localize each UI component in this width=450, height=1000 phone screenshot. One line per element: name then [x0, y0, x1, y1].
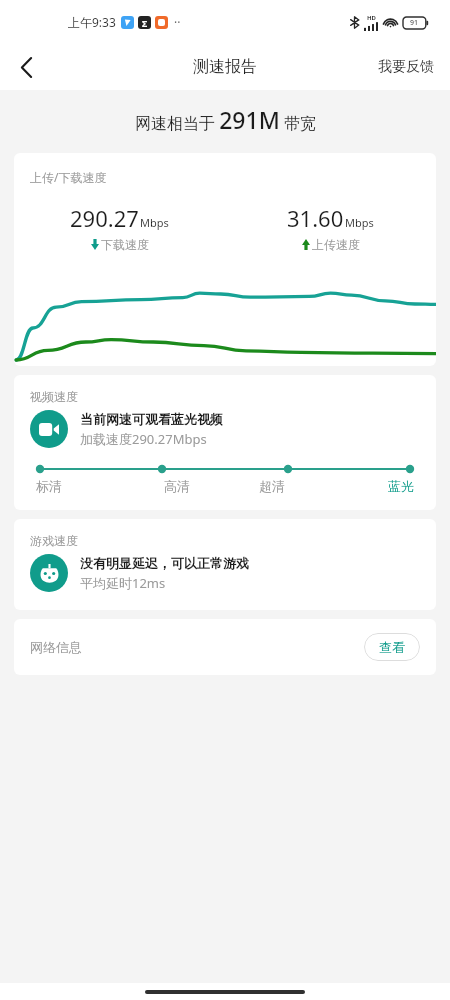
staticText: 当前网速可观看蓝光视频 — [80, 411, 223, 427]
staticText: 91 — [410, 18, 419, 28]
button[interactable]: 查看 — [364, 633, 420, 661]
staticText: 上传速度 — [312, 237, 360, 252]
staticText: 290.27 — [70, 203, 139, 233]
staticText: 网速相当于 291M 带宽 — [135, 104, 316, 135]
staticText: ·· — [174, 14, 181, 30]
button[interactable]: 我要反馈 — [362, 44, 450, 90]
staticText: Σ — [142, 17, 148, 29]
staticText: 高清 — [164, 478, 190, 494]
staticText: 测速报告 — [193, 57, 257, 77]
staticText: 没有明显延迟，可以正常游戏 — [80, 555, 249, 571]
staticText: 游戏速度 — [30, 533, 78, 548]
staticText: 网络信息 — [30, 639, 82, 655]
staticText: 标清 — [36, 478, 62, 494]
staticText: 下载速度 — [101, 237, 149, 252]
staticText: 上午9:33 — [68, 14, 116, 30]
staticText: 查看 — [379, 639, 405, 655]
staticText: HD — [367, 14, 376, 22]
staticText: Mbps — [345, 215, 374, 230]
staticText: Mbps — [140, 215, 169, 230]
staticText: 平均延时12ms — [80, 574, 166, 592]
staticText: 上传/下载速度 — [30, 169, 107, 185]
staticText: 加载速度290.27Mbps — [80, 430, 207, 448]
staticText: 超清 — [259, 478, 285, 494]
staticText: 蓝光 — [388, 478, 414, 494]
staticText: 视频速度 — [30, 389, 78, 404]
staticText: 31.60 — [287, 203, 344, 233]
staticText: 我要反馈 — [378, 58, 434, 76]
button[interactable]: Back — [0, 44, 52, 90]
